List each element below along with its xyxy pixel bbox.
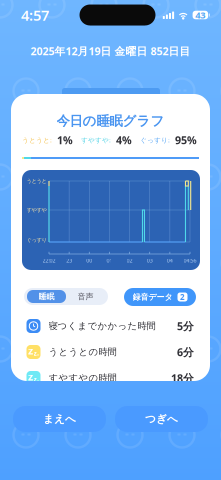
staticText: 6分 [177,345,194,359]
staticText: 22:02 [42,257,55,264]
button[interactable]: まえへ [13,406,106,432]
staticText: 23 [66,257,72,264]
button[interactable]: つぎへ [115,406,208,432]
button[interactable]: 録音データ [124,288,196,306]
staticText: つぎへ [145,412,178,425]
button[interactable]: z [11,365,210,391]
button[interactable]: 音声 [66,290,105,303]
staticText: うとうと: [22,136,52,144]
staticText: まえへ [43,412,76,425]
button[interactable]: 寝つくまでかかった時間 [11,313,210,339]
button[interactable]: z [11,339,210,365]
staticText: 今日の睡眠グラフ [56,113,164,129]
staticText: ぐっすり [26,237,46,243]
staticText: z [37,352,39,357]
staticText: すやすや: [81,136,111,144]
staticText: 18分 [171,371,194,385]
staticText: 03 [147,257,153,264]
staticText: 1% [57,133,73,147]
staticText: z [28,343,33,357]
staticText: 睡眠 [38,292,54,301]
staticText: 43 [195,9,205,21]
staticText: ぐっすり: [140,136,170,144]
button[interactable]: 睡眠 [27,290,66,303]
staticText: z [28,369,33,383]
staticText: 95% [175,133,197,147]
staticText: 5分 [177,319,194,333]
staticText: うとうと [26,178,46,184]
staticText: 寝つくまでかかった時間 [48,320,155,332]
staticText: 04:56 [183,257,196,264]
staticText: 音声 [77,292,93,301]
staticText: z [33,349,36,357]
staticText: 02 [127,257,133,264]
staticText: 04 [167,257,173,264]
staticText: 4% [116,133,132,147]
staticText: 2 [180,292,185,302]
staticText: 4:57 [21,5,49,25]
staticText: 00 [86,257,92,264]
staticText: z [37,378,39,383]
staticText: 2025年12月19日 金曜日 852日目 [30,44,190,58]
staticText: すやすや [26,207,46,213]
staticText: z [33,375,36,383]
staticText: 01 [106,257,112,264]
staticText: すやすやの時間 [48,372,116,384]
staticText: うとうとの時間 [48,346,116,358]
staticText: 録音データ [132,292,172,302]
